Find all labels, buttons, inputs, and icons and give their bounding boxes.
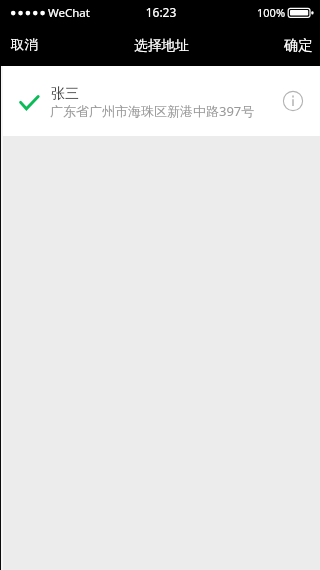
- staticText: 选择地址: [134, 37, 189, 54]
- button[interactable]: 张三: [0, 66, 320, 136]
- staticText: WeChat: [48, 5, 90, 21]
- staticText: 广东省广州市海珠区新港中路397号: [50, 102, 255, 120]
- staticText: 取消: [11, 36, 38, 53]
- button[interactable]: 确定: [268, 26, 320, 66]
- button[interactable]: 取消: [0, 27, 54, 66]
- staticText: 确定: [284, 36, 313, 54]
- staticText: 张三: [51, 85, 79, 103]
- button[interactable]: More information: [271, 66, 315, 136]
- staticText: 100%: [257, 5, 286, 20]
- staticText: 16:23: [1, 4, 320, 20]
